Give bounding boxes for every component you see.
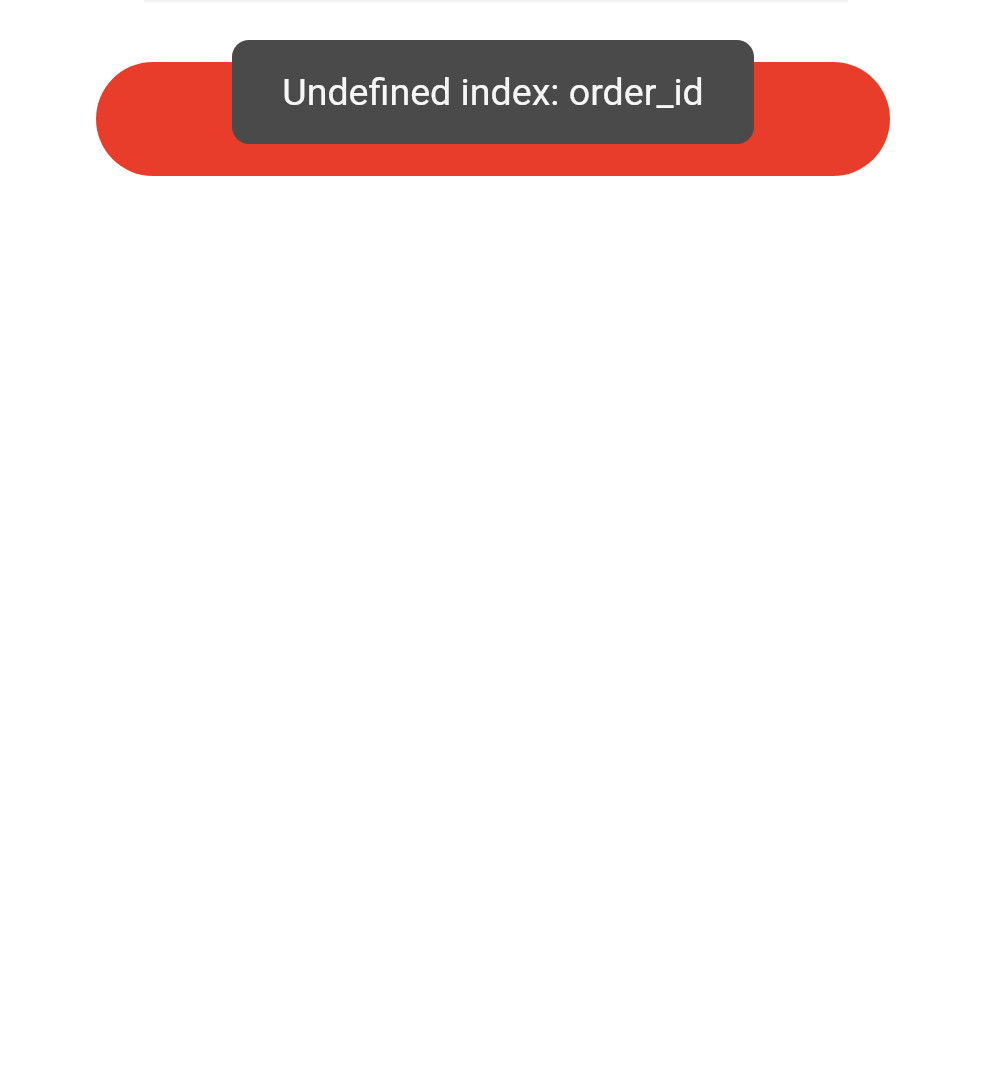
button[interactable]: Primary action (96, 62, 890, 176)
staticText: Undefined index: order_id (282, 70, 704, 114)
